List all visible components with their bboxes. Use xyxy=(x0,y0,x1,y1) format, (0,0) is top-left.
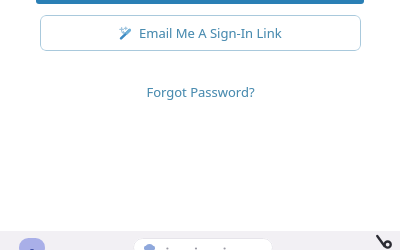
staticText: Email Me A Sign-In Link xyxy=(139,24,282,42)
staticText: Forgot Password? xyxy=(146,83,255,101)
button[interactable] xyxy=(36,0,364,4)
button[interactable]: Email Me A Sign-In Link xyxy=(40,15,361,51)
button[interactable]: Assistant xyxy=(19,238,45,250)
button[interactable]: Share xyxy=(374,232,392,250)
button[interactable]: Forgot Password? xyxy=(136,79,265,105)
button[interactable] xyxy=(133,238,273,250)
